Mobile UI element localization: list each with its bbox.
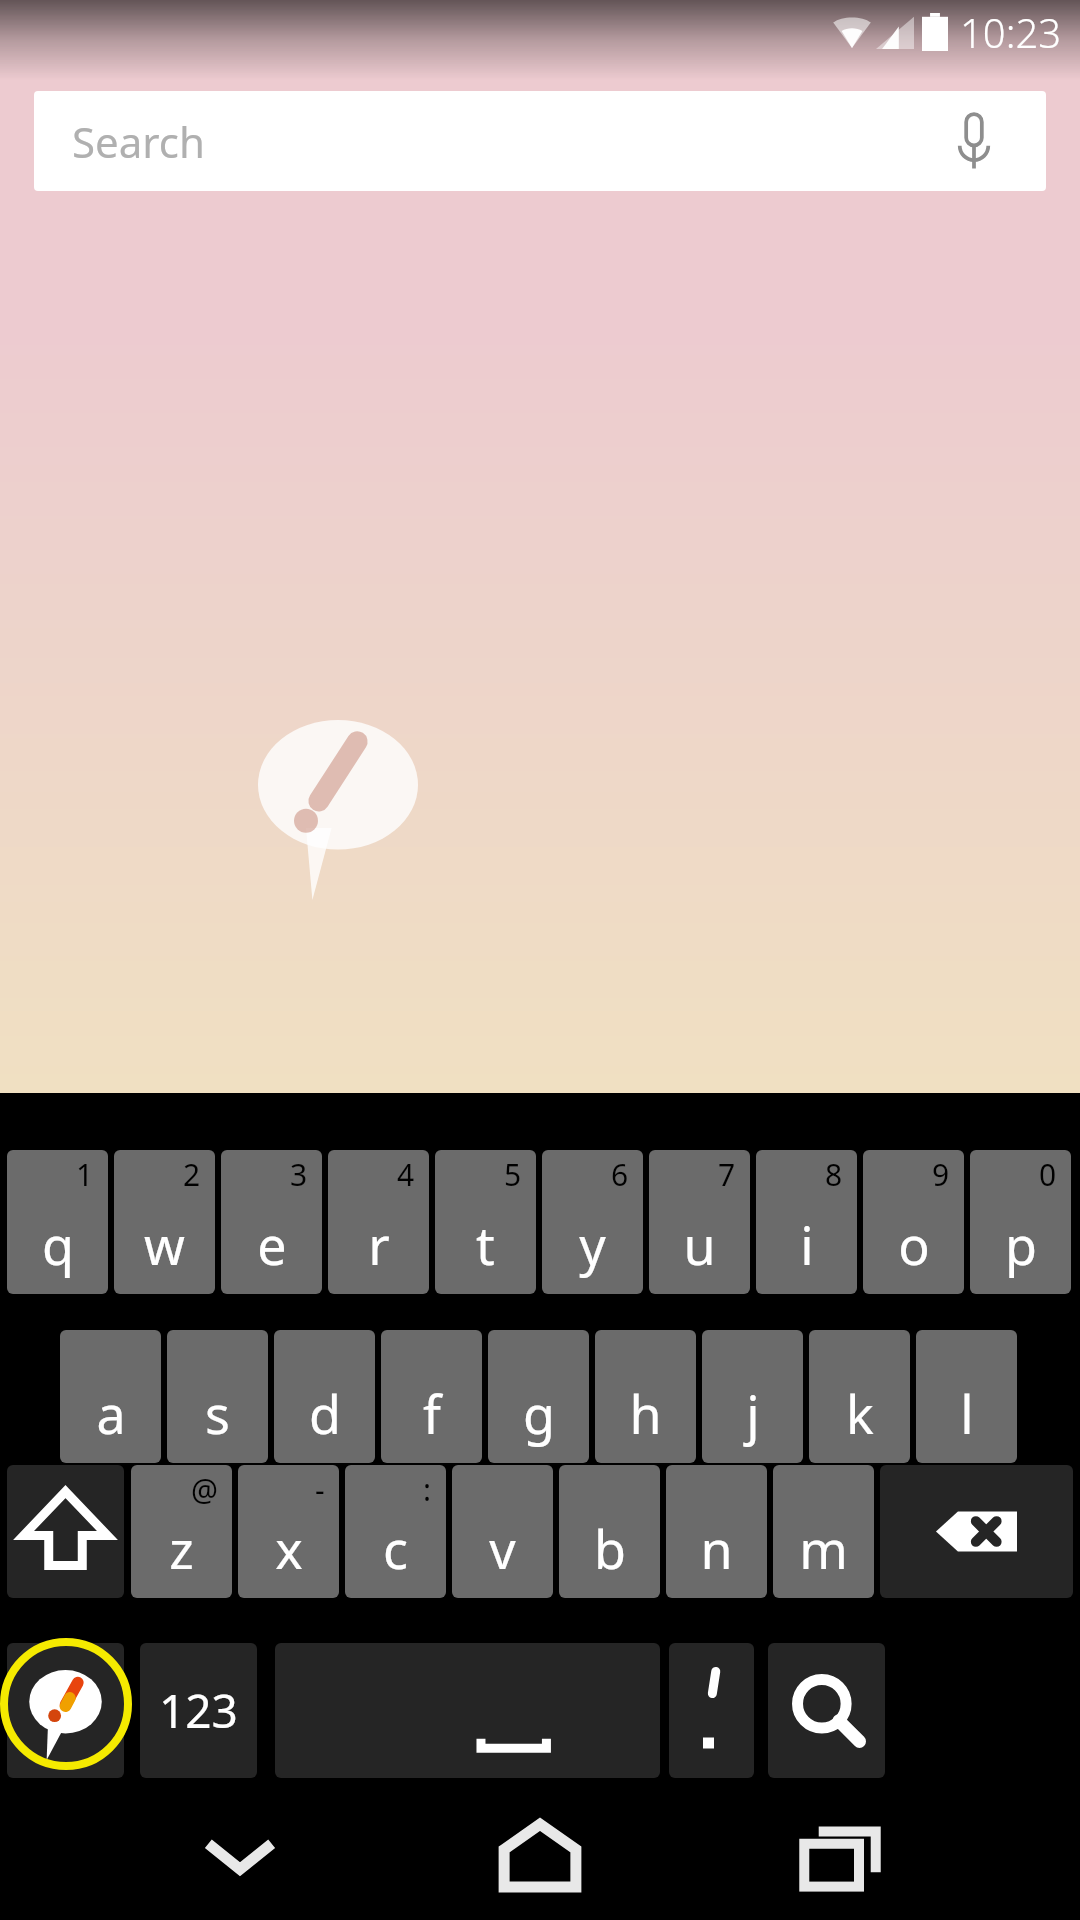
staticText: 8 [825,1154,843,1195]
staticText: 2 [183,1154,201,1195]
button[interactable]: 2 [114,1150,215,1294]
button[interactable]: a [60,1330,161,1463]
staticText: w [144,1209,185,1280]
button[interactable]: f [381,1330,482,1463]
staticText: 123 [159,1679,238,1742]
staticText: 0 [1039,1154,1057,1195]
button[interactable]: n [666,1465,767,1598]
staticText: r [368,1209,390,1280]
staticText: j [746,1378,760,1449]
button[interactable]: Search [34,91,1046,191]
staticText: s [205,1378,230,1449]
staticText: 1 [76,1154,94,1195]
staticText: 6 [611,1154,629,1195]
staticText: q [42,1209,74,1280]
button[interactable]: h [595,1330,696,1463]
button[interactable]: Shift [7,1465,124,1598]
button[interactable]: s [167,1330,268,1463]
button[interactable]: 4 [328,1150,429,1294]
button[interactable]: m [773,1465,874,1598]
staticText: - [315,1469,325,1510]
staticText: n [700,1513,733,1584]
staticText: 5 [504,1154,522,1195]
staticText: k [846,1378,874,1449]
button[interactable] [140,1643,257,1778]
button[interactable]: 0 [970,1150,1071,1294]
button[interactable]: b [559,1465,660,1598]
button[interactable]: Search [768,1643,885,1778]
button[interactable]: Hide keyboard [180,1796,300,1916]
staticText: 9 [932,1154,950,1195]
staticText: 3 [290,1154,308,1195]
staticText: 4 [397,1154,415,1195]
staticText: b [594,1513,626,1584]
staticText: p [1005,1209,1037,1280]
staticText: z [169,1513,194,1584]
button[interactable]: 7 [649,1150,750,1294]
staticText: 7 [718,1154,736,1195]
button[interactable]: 6 [542,1150,643,1294]
staticText: c [383,1513,408,1584]
button[interactable]: d [274,1330,375,1463]
staticText: l [960,1378,974,1449]
button[interactable]: @ [131,1465,232,1598]
staticText: u [683,1209,716,1280]
button[interactable]: Recent apps [780,1796,900,1916]
staticText: a [96,1378,126,1449]
button[interactable]: l [916,1330,1017,1463]
staticText: x [275,1513,303,1584]
button[interactable]: 8 [756,1150,857,1294]
staticText: 10:23 [960,5,1062,59]
staticText: e [257,1209,287,1280]
staticText: v [489,1513,516,1584]
staticText: f [423,1378,441,1449]
button[interactable]: Voice search [942,109,1006,173]
button[interactable]: g [488,1330,589,1463]
button[interactable]: Backspace [880,1465,1073,1598]
button[interactable]: Space [275,1643,660,1778]
staticText: t [476,1209,495,1280]
button[interactable]: 9 [863,1150,964,1294]
staticText: o [898,1209,930,1280]
staticText: Search [72,113,205,170]
button[interactable]: 3 [221,1150,322,1294]
button[interactable]: - [238,1465,339,1598]
button[interactable]: Home [480,1796,600,1916]
button[interactable]: Emoji [7,1643,124,1778]
button[interactable]: : [345,1465,446,1598]
staticText: m [799,1513,848,1584]
staticText: @ [191,1469,218,1510]
button[interactable]: 1 [7,1150,108,1294]
button[interactable]: 5 [435,1150,536,1294]
button[interactable]: v [452,1465,553,1598]
staticText: g [523,1378,555,1449]
button[interactable]: k [809,1330,910,1463]
staticText: h [629,1378,662,1449]
staticText: i [800,1209,814,1280]
staticText: : [423,1469,432,1510]
staticText: y [579,1209,606,1280]
button[interactable]: Period [669,1643,754,1778]
staticText: d [309,1378,341,1449]
button[interactable]: j [702,1330,803,1463]
